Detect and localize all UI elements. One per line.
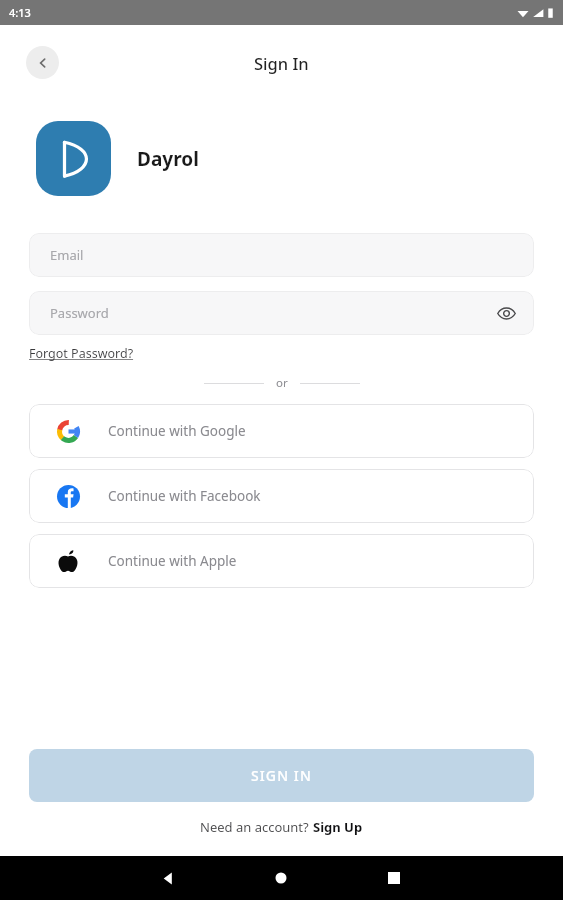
button[interactable]: Show password	[493, 300, 519, 326]
staticText: Need an account?	[200, 818, 313, 836]
button[interactable]: Continue with Facebook	[29, 469, 534, 523]
button[interactable]: Continue with Google	[29, 404, 534, 458]
button[interactable]: Email	[29, 233, 534, 277]
staticText: Dayrol	[137, 146, 199, 172]
staticText: SIGN IN	[251, 766, 312, 785]
staticText: Password	[50, 304, 109, 322]
button[interactable]: Continue with Apple	[29, 534, 534, 588]
button[interactable]: Sign Up	[313, 818, 363, 836]
button[interactable]: Back	[26, 46, 59, 79]
staticText: Email	[50, 246, 84, 264]
button[interactable]: SIGN IN	[29, 749, 534, 802]
button[interactable]: Password	[29, 291, 534, 335]
button[interactable]: Back	[112, 856, 224, 900]
staticText: Continue with Google	[108, 422, 246, 440]
staticText: Sign In	[254, 52, 309, 74]
button[interactable]: Recent apps	[337, 856, 450, 900]
staticText: Continue with Apple	[108, 552, 237, 570]
staticText: 4:13	[9, 5, 31, 20]
button[interactable]: Home	[224, 856, 337, 900]
button[interactable]: Forgot Password?	[29, 345, 134, 362]
staticText: or	[276, 375, 288, 391]
staticText: Continue with Facebook	[108, 487, 261, 505]
